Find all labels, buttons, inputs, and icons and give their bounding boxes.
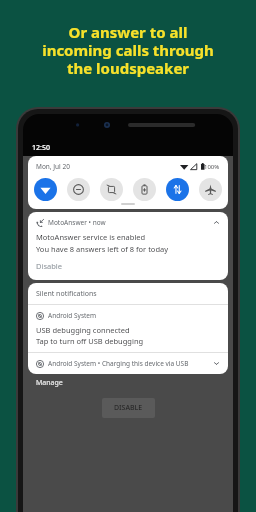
other: Collapse xyxy=(213,219,220,226)
button[interactable]: DISABLE xyxy=(102,398,155,418)
button[interactable]: Android System xyxy=(28,305,228,352)
staticText: 100% xyxy=(204,163,220,171)
staticText: You have 8 answers left of 8 for today xyxy=(36,244,169,254)
button[interactable]: Mobile data xyxy=(166,178,189,201)
button[interactable]: Do not disturb xyxy=(67,178,90,201)
button[interactable]: Disable xyxy=(36,261,62,271)
button[interactable]: Android System • Charging this device vi… xyxy=(28,353,228,374)
button[interactable]: Auto-rotate xyxy=(100,178,123,201)
staticText: Android System • Charging this device vi… xyxy=(48,359,189,368)
staticText: Android System xyxy=(48,311,97,320)
staticText: MotoAnswer service is enabled xyxy=(36,232,146,242)
button[interactable]: MotoAnswer • now xyxy=(28,212,228,280)
other: Expand xyxy=(213,360,220,367)
staticText: Silent notifications xyxy=(36,289,97,299)
staticText: USB debugging connected xyxy=(36,325,130,335)
staticText: Mon, Jul 20 xyxy=(36,162,70,171)
button[interactable]: Manage xyxy=(36,378,63,388)
staticText: Or answer to all incoming calls through … xyxy=(42,22,214,79)
button[interactable]: Airplane mode xyxy=(199,178,222,201)
staticText: 12:50 xyxy=(32,143,50,153)
staticText: MotoAnswer • now xyxy=(48,218,106,227)
staticText: DISABLE xyxy=(114,403,143,413)
button[interactable]: Wi-Fi xyxy=(34,178,57,201)
button[interactable]: Battery saver xyxy=(133,178,156,201)
staticText: Tap to turn off USB debugging xyxy=(36,336,144,346)
